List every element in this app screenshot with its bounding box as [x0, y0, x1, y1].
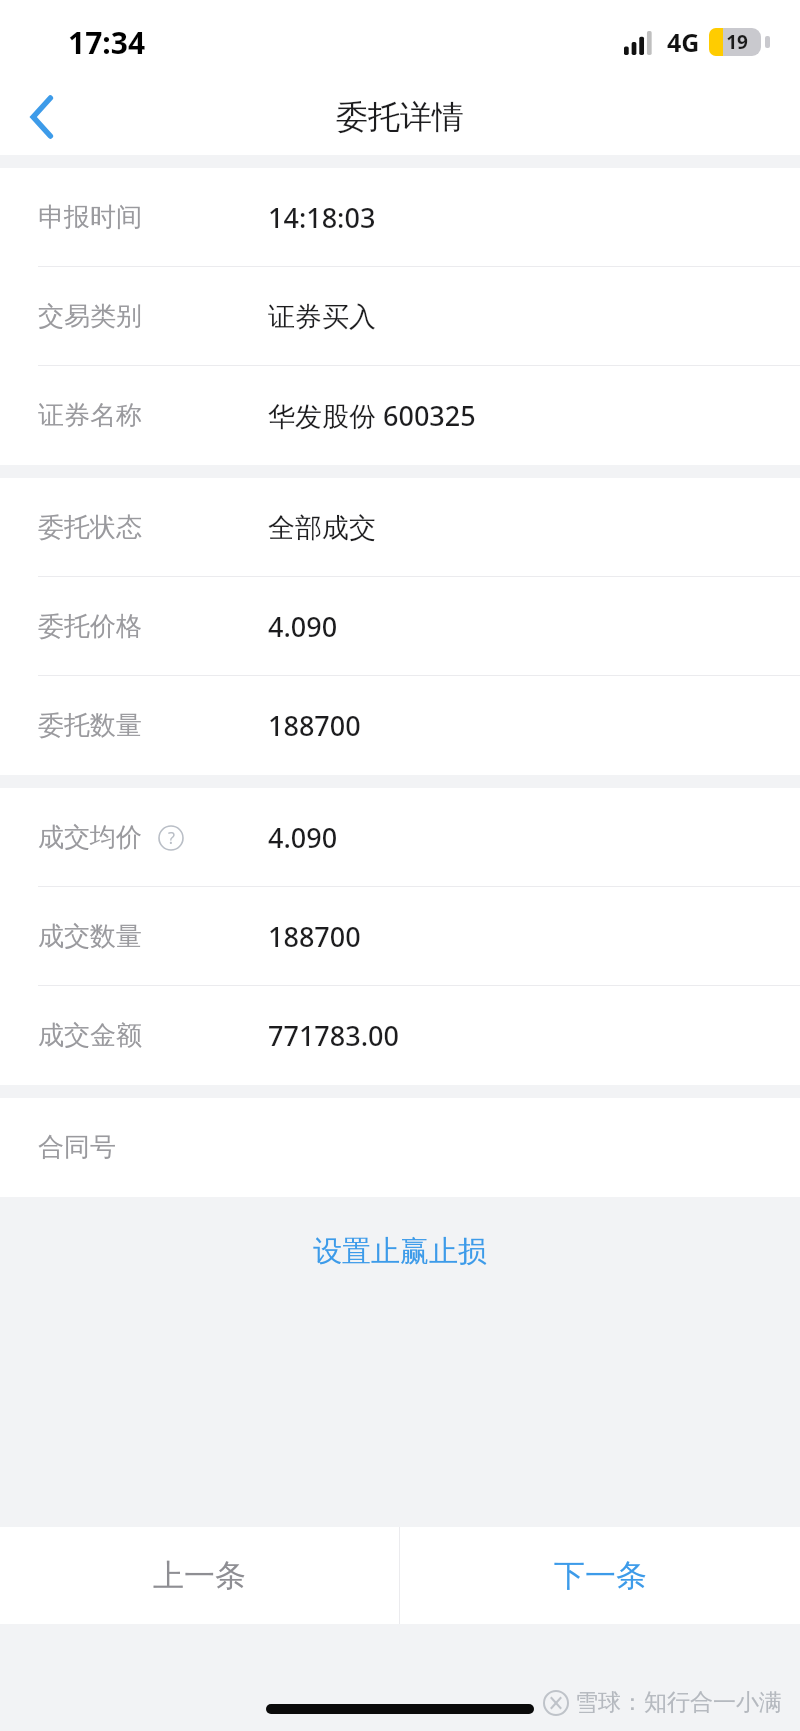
staticText: 申报时间: [38, 201, 142, 234]
staticText: 委托详情: [336, 97, 464, 137]
staticText: 委托数量: [38, 709, 142, 742]
staticText: 188700: [268, 918, 361, 955]
staticText: 雪球：知行合一小满: [575, 1688, 782, 1717]
staticText: 华发股份 600325: [268, 397, 476, 434]
button[interactable]: 成交金额: [0, 986, 800, 1085]
staticText: 4.090: [268, 608, 338, 645]
staticText: 合同号: [38, 1131, 116, 1164]
button[interactable]: 委托状态: [0, 478, 800, 577]
staticText: 证券名称: [38, 399, 142, 432]
staticText: 17:34: [68, 22, 146, 63]
staticText: 证券买入: [268, 300, 376, 334]
staticText: 成交金额: [38, 1019, 142, 1052]
button[interactable]: 成交数量: [0, 887, 800, 986]
button[interactable]: 申报时间: [0, 168, 800, 267]
staticText: 4.090: [268, 819, 338, 856]
staticText: ?: [168, 827, 175, 849]
button[interactable]: 下一条: [400, 1527, 800, 1624]
staticText: 14:18:03: [268, 199, 376, 236]
staticText: 委托状态: [38, 511, 142, 544]
button[interactable]: 证券名称: [0, 366, 800, 465]
staticText: 交易类别: [38, 300, 142, 333]
button[interactable]: 设置止赢止损: [220, 1216, 580, 1286]
button[interactable]: 委托价格: [0, 577, 800, 676]
staticText: 上一条: [153, 1556, 246, 1595]
staticText: 4G: [667, 25, 700, 59]
button[interactable]: 委托数量: [0, 676, 800, 775]
staticText: 委托价格: [38, 610, 142, 643]
staticText: 771783.00: [268, 1017, 399, 1054]
staticText: 下一条: [554, 1556, 647, 1595]
button[interactable]: 返回: [0, 78, 84, 155]
staticText: 188700: [268, 707, 361, 744]
button[interactable]: 交易类别: [0, 267, 800, 366]
button[interactable]: 帮助说明: [156, 823, 186, 853]
staticText: 19: [713, 29, 761, 55]
button[interactable]: 上一条: [0, 1527, 399, 1624]
staticText: 全部成交: [268, 511, 376, 545]
staticText: 成交数量: [38, 920, 142, 953]
staticText: 成交均价: [38, 821, 142, 854]
staticText: 设置止赢止损: [313, 1233, 487, 1270]
button[interactable]: 成交均价: [0, 788, 800, 887]
button[interactable]: 合同号: [0, 1098, 800, 1197]
